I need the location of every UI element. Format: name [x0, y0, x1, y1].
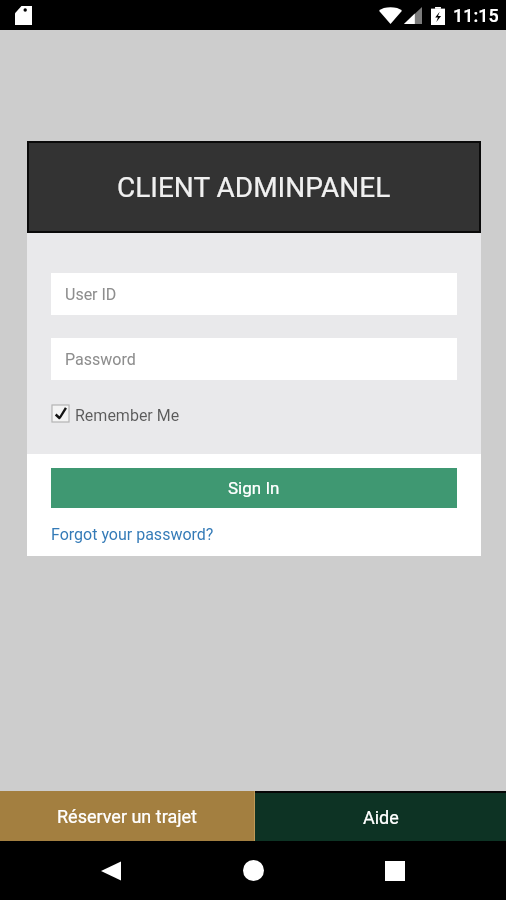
staticText: User ID [65, 285, 117, 304]
staticText: 11:15 [453, 5, 499, 26]
staticText: Remember Me [75, 406, 180, 425]
staticText: Forgot your password? [51, 525, 214, 544]
button[interactable]: Recent apps [352, 841, 438, 900]
staticText: CLIENT ADMINPANEL [117, 171, 391, 204]
button[interactable]: Sign In [51, 468, 457, 508]
button[interactable]: User ID [51, 273, 457, 315]
button[interactable]: Forgot your password? [51, 525, 214, 544]
staticText: Sign In [228, 478, 280, 498]
button[interactable]: Réserver un trajet [0, 791, 254, 841]
button[interactable]: Remember Me [51, 404, 180, 423]
staticText: Password [65, 350, 136, 369]
staticText: Aide [363, 807, 399, 828]
button[interactable]: Home [210, 841, 296, 900]
button[interactable]: Password [51, 338, 457, 380]
button[interactable]: Back [68, 841, 154, 900]
staticText: Réserver un trajet [57, 806, 197, 827]
button[interactable]: Aide [255, 793, 506, 841]
